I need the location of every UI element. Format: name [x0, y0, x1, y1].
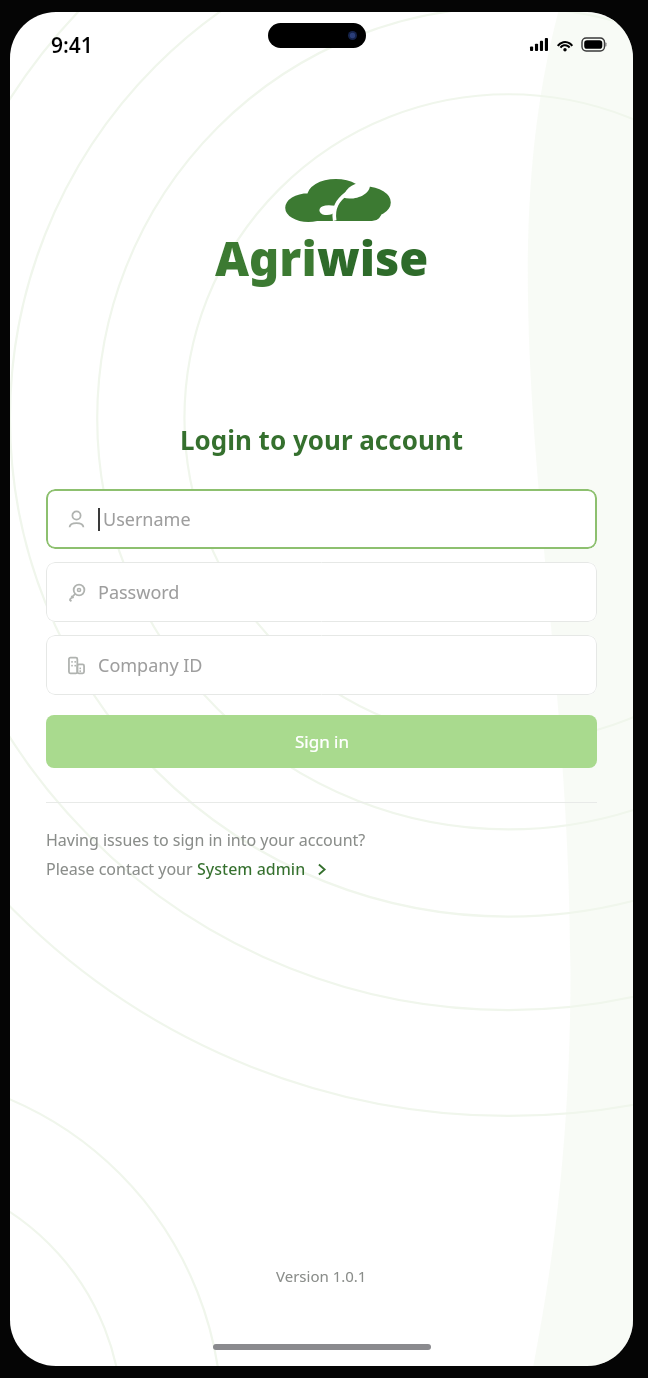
button[interactable]: Password	[46, 562, 597, 622]
button[interactable]: Username	[46, 489, 597, 549]
staticText: Version 1.0.1	[276, 1266, 367, 1286]
staticText: Username	[103, 507, 191, 532]
staticText: Login to your account	[10, 422, 633, 457]
button[interactable]: Sign in	[46, 715, 597, 768]
staticText: wise	[317, 226, 429, 290]
staticText: Please contact your	[46, 858, 197, 880]
staticText: Having issues to sign in into your accou…	[46, 829, 366, 851]
staticText: Password	[98, 580, 180, 605]
button[interactable]: System admin	[197, 858, 328, 880]
staticText: Agri	[215, 226, 317, 290]
staticText: Company ID	[98, 653, 203, 678]
staticText: 9:41	[51, 31, 93, 60]
staticText: System admin	[197, 858, 306, 880]
button[interactable]: Company ID	[46, 635, 597, 695]
staticText: Sign in	[295, 730, 349, 753]
